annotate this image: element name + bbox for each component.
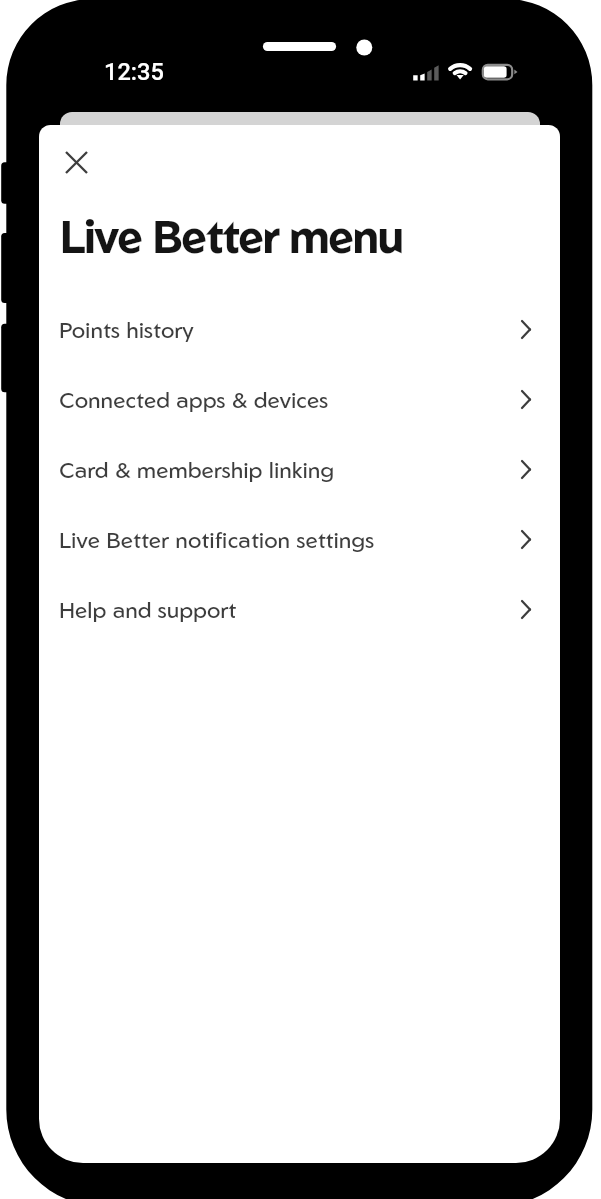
- staticText: Points history: [59, 315, 194, 343]
- button[interactable]: Live Better notification settings: [39, 504, 560, 574]
- staticText: 12:35: [104, 58, 164, 86]
- button[interactable]: Connected apps & devices: [39, 364, 560, 434]
- staticText: Connected apps & devices: [59, 385, 329, 413]
- button[interactable]: Close: [57, 143, 96, 182]
- button[interactable]: Points history: [39, 294, 560, 364]
- staticText: Card & membership linking: [59, 455, 335, 483]
- staticText: Help and support: [59, 595, 237, 623]
- button[interactable]: Help and support: [39, 574, 560, 644]
- staticText: Live Better menu: [60, 208, 403, 263]
- staticText: Live Better notification settings: [59, 525, 375, 553]
- button[interactable]: Card & membership linking: [39, 434, 560, 504]
